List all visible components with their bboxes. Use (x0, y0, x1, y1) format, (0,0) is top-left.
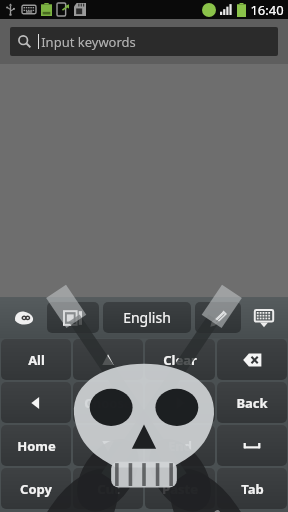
button[interactable]: Up (73, 339, 143, 380)
button[interactable]: Emoji (5, 302, 43, 333)
button[interactable]: Cut (73, 468, 143, 509)
button[interactable]: Input keywords (10, 27, 278, 56)
button[interactable]: Down (73, 425, 143, 466)
staticText: Cut (97, 480, 120, 498)
button[interactable]: Back (217, 382, 287, 423)
button[interactable]: Tab (217, 468, 287, 509)
staticText: English (123, 308, 171, 327)
button[interactable]: Handwriting (195, 302, 241, 333)
staticText: All (28, 351, 45, 369)
staticText: Paste (162, 480, 198, 498)
button[interactable]: Copy (1, 468, 71, 509)
staticText: Tab (241, 480, 264, 498)
staticText: Back (236, 394, 268, 412)
button[interactable]: English (103, 302, 191, 333)
button[interactable]: Hide keyboard (245, 302, 283, 333)
button[interactable]: Backspace (217, 339, 287, 380)
button[interactable]: All (1, 339, 71, 380)
staticText: Copy (20, 480, 52, 498)
button[interactable]: Clear (145, 339, 215, 380)
button[interactable]: Right (145, 382, 215, 423)
staticText: Input keywords (41, 33, 136, 51)
button[interactable]: Left (1, 382, 71, 423)
staticText: Choose (84, 394, 132, 412)
button[interactable]: Space (217, 425, 287, 466)
staticText: Home (17, 437, 56, 455)
staticText: End (168, 437, 192, 455)
button[interactable]: End (145, 425, 215, 466)
staticText: Clear (163, 351, 197, 369)
button[interactable]: Home (1, 425, 71, 466)
button[interactable]: Choose (73, 382, 143, 423)
button[interactable]: Paste (145, 468, 215, 509)
button[interactable]: Layout (47, 302, 99, 333)
staticText: 16:40 (250, 1, 284, 19)
